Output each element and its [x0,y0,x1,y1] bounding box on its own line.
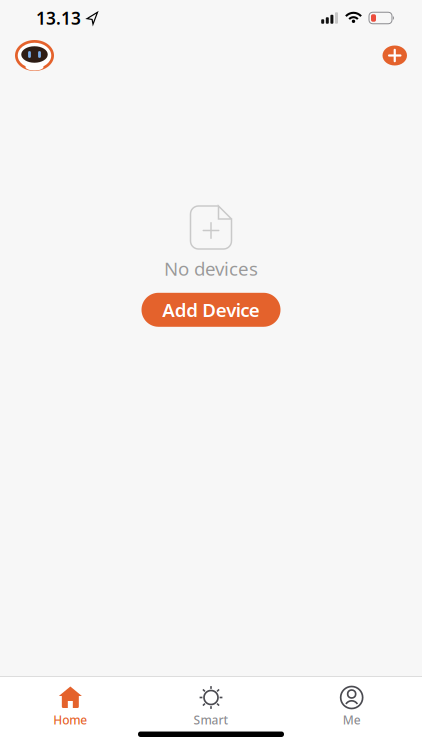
staticText: No devices [164,256,258,281]
button[interactable]: Add Device [382,45,422,65]
button[interactable]: Smart [141,686,281,728]
staticText: Smart [193,712,228,728]
button[interactable]: Assistant [0,40,54,71]
button[interactable]: Add Device [141,293,280,327]
button[interactable]: Me [281,686,422,728]
staticText: 13.13 [36,6,81,29]
staticText: Home [53,712,87,728]
button[interactable]: Home [0,686,141,728]
staticText: Me [343,712,361,728]
staticText: Add Device [162,297,260,322]
